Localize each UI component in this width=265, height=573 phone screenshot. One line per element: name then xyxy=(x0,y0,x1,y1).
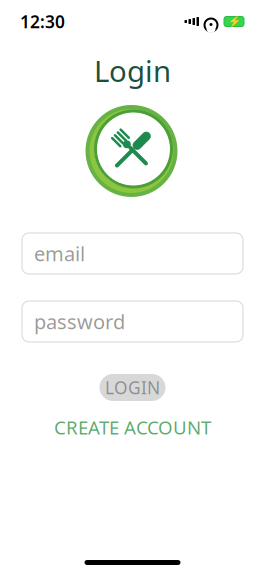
staticText: ⚡ xyxy=(227,15,240,28)
staticText: 12:30 xyxy=(20,10,65,33)
staticText: CREATE ACCOUNT xyxy=(54,415,211,440)
button[interactable]: CREATE ACCOUNT xyxy=(46,411,219,444)
staticText: Login xyxy=(94,51,171,90)
button[interactable]: LOGIN xyxy=(99,374,165,401)
staticText: LOGIN xyxy=(105,376,160,399)
staticText: password xyxy=(34,308,125,335)
staticText: email xyxy=(34,240,85,267)
